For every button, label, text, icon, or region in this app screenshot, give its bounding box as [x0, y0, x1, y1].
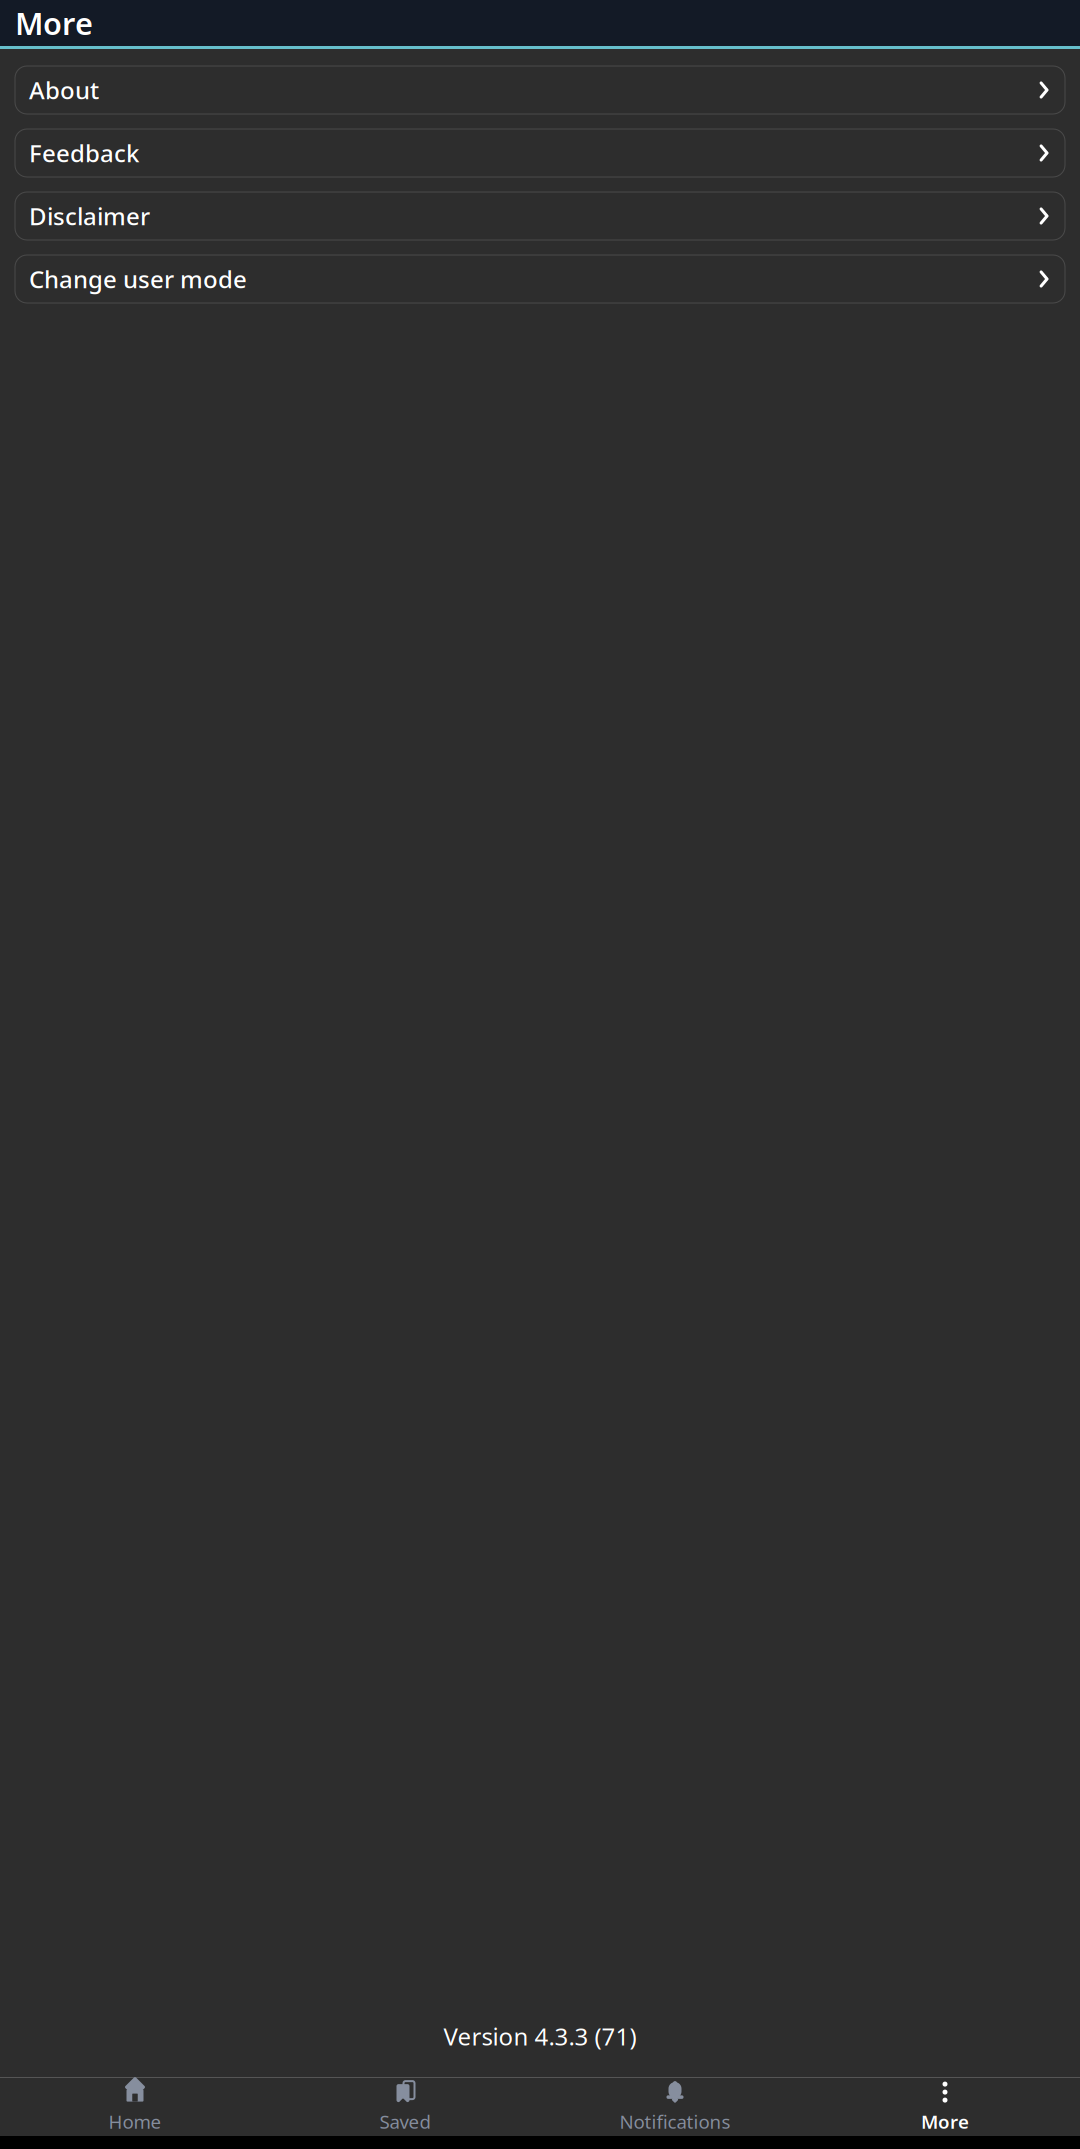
- staticText: Version 4.3.3 (71): [443, 2020, 636, 2052]
- staticText: Disclaimer: [29, 200, 150, 232]
- staticText: Saved: [379, 2109, 430, 2134]
- button[interactable]: Home: [0, 2074, 270, 2140]
- staticText: About: [29, 74, 99, 106]
- button[interactable]: More: [810, 2074, 1080, 2140]
- button[interactable]: About: [15, 66, 1065, 114]
- button[interactable]: Change user mode: [15, 255, 1065, 303]
- button[interactable]: Notifications: [540, 2074, 810, 2140]
- staticText: More: [921, 2109, 969, 2134]
- staticText: Notifications: [619, 2109, 730, 2134]
- staticText: Change user mode: [29, 263, 247, 295]
- staticText: Feedback: [29, 137, 139, 169]
- staticText: Home: [108, 2109, 161, 2134]
- staticText: More: [15, 3, 93, 43]
- button[interactable]: Disclaimer: [15, 192, 1065, 240]
- button[interactable]: Saved: [270, 2074, 540, 2140]
- button[interactable]: Feedback: [15, 129, 1065, 177]
